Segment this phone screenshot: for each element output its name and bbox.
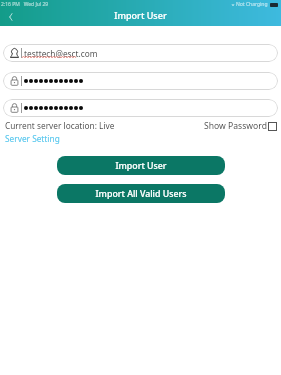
button[interactable]: Back [4,10,18,24]
button[interactable]: Import All Valid Users [57,184,225,203]
staticText: Not Charging [236,1,268,8]
button[interactable] [3,99,278,117]
button[interactable] [3,72,278,90]
staticText: testtech@esct.com [24,48,98,59]
staticText: 2:16 PM Wed Jul 29 [1,1,49,8]
button[interactable]: Show Password [204,120,277,132]
staticText: Current server location: Live [5,120,115,131]
staticText: Import All Valid Users [95,188,187,200]
staticText: Import User [115,160,167,172]
button[interactable]: Server Setting [5,133,60,144]
button[interactable]: Import User [57,156,225,175]
button[interactable]: testtech@esct.com [3,44,278,62]
staticText: Import User [0,9,281,21]
staticText: Show Password [204,120,267,132]
